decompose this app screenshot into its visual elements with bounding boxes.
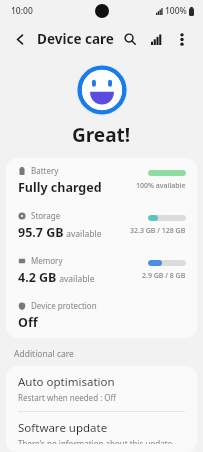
staticText: Device care xyxy=(37,30,114,48)
staticText: There's no information about this update xyxy=(18,438,173,444)
button[interactable]: Device protection xyxy=(6,293,197,338)
staticText: available xyxy=(64,228,102,240)
staticText: Memory xyxy=(31,255,63,266)
button[interactable]: Search xyxy=(119,28,141,50)
button[interactable]: Battery xyxy=(6,158,197,203)
button[interactable]: More options xyxy=(171,28,193,50)
button[interactable]: Usage statistics xyxy=(145,28,167,50)
staticText: Off xyxy=(18,314,38,331)
staticText: Restart when needed : Off xyxy=(18,392,117,403)
staticText: 2.9 GB / 8 GB xyxy=(142,271,186,281)
button[interactable]: Storage xyxy=(6,203,197,248)
staticText: Device protection xyxy=(31,300,97,311)
staticText: Storage xyxy=(31,210,61,221)
staticText: Additional care xyxy=(14,348,74,360)
button[interactable]: Software update xyxy=(6,412,197,452)
button[interactable]: Back xyxy=(10,29,30,49)
staticText: Auto optimisation xyxy=(18,374,115,390)
staticText: 100% xyxy=(165,5,187,17)
button[interactable]: Memory xyxy=(6,248,197,293)
staticText: 32.3 GB / 128 GB xyxy=(130,226,186,236)
staticText: 4.2 GB xyxy=(18,269,57,286)
staticText: 95.7 GB xyxy=(18,224,64,241)
button[interactable]: Auto optimisation xyxy=(6,366,197,411)
staticText: 100% available xyxy=(136,181,186,191)
staticText: 10:00 xyxy=(11,5,33,17)
staticText: Great! xyxy=(72,122,131,148)
staticText: Fully charged xyxy=(18,179,102,196)
staticText: Software update xyxy=(18,420,108,436)
staticText: available xyxy=(57,273,95,285)
staticText: Battery xyxy=(31,165,59,176)
